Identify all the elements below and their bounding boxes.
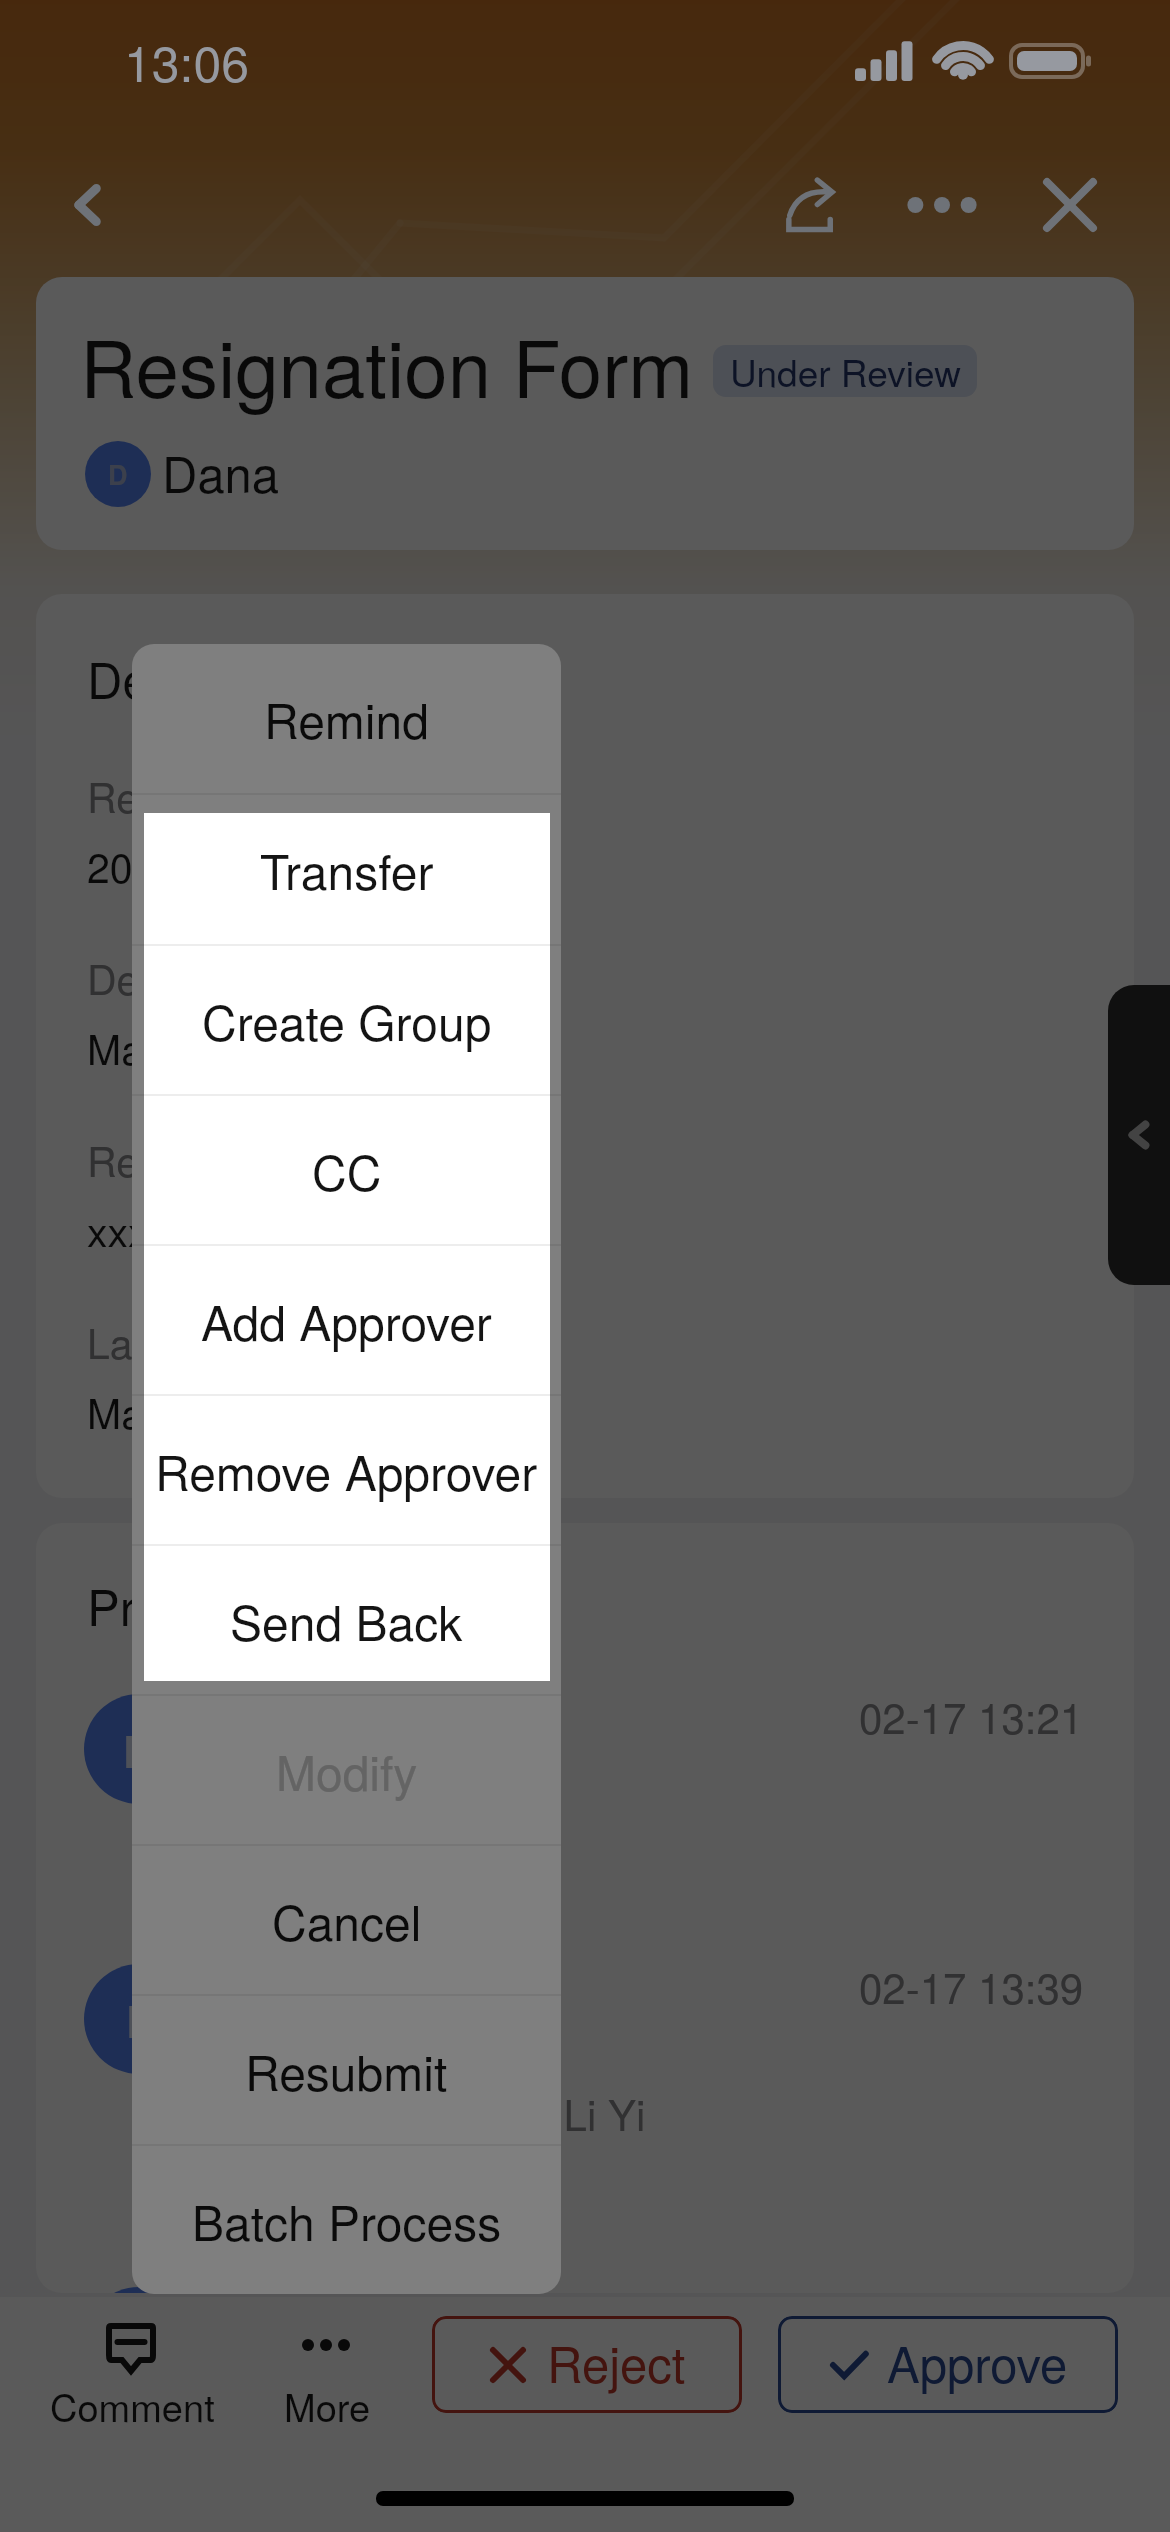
staticText: Resignation Date <box>87 766 401 825</box>
staticText: Remind <box>264 684 429 753</box>
button[interactable]: Back <box>50 167 126 243</box>
staticText: 02-17 13:21 <box>859 1686 1084 1746</box>
button[interactable]: Resubmit <box>132 1996 561 2144</box>
staticText: Create Group <box>202 986 492 1055</box>
staticText: Add Approver <box>201 1286 492 1355</box>
button[interactable]: More options <box>900 163 984 247</box>
button[interactable]: Transfer <box>132 795 561 944</box>
staticText: Resubmit <box>245 2036 448 2105</box>
button[interactable]: Comment <box>26 2297 236 2432</box>
button[interactable]: Cancel <box>132 1846 561 1994</box>
staticText: xxxxxxxxxxxxxxxxxxxxx <box>87 1200 518 1259</box>
staticText: Approve <box>887 2327 1068 2397</box>
button[interactable]: Approve <box>778 2316 1118 2413</box>
staticText: 2024-02-20 <box>87 836 297 895</box>
staticText: D <box>123 1718 155 1781</box>
button[interactable]: Create Group <box>132 946 561 1094</box>
button[interactable]: Close <box>1028 163 1112 247</box>
button[interactable]: Modify <box>132 1696 561 1844</box>
staticText: Cancel <box>272 1886 422 1955</box>
staticText: Marketing Department <box>87 1018 493 1077</box>
staticText: Batch Process <box>192 2186 502 2255</box>
staticText: 02-17 13:39 <box>859 1956 1084 2016</box>
button[interactable]: Batch Process <box>132 2146 561 2294</box>
staticText: Dana <box>220 1712 326 1775</box>
staticText: Modify <box>276 1736 418 1805</box>
staticText: More <box>284 2378 371 2432</box>
staticText: Remove Approver <box>155 1436 538 1505</box>
button[interactable]: More <box>246 2297 408 2432</box>
button[interactable]: Reject <box>432 2316 742 2413</box>
staticText: Reject <box>547 2327 686 2397</box>
staticText: Reason <box>87 1130 228 1189</box>
staticText: L <box>126 1988 153 2051</box>
button[interactable]: Add Approver <box>132 1246 561 1394</box>
staticText: Approved, sent to Li Yi <box>225 2083 646 2143</box>
staticText: Last Working Day <box>87 1312 409 1371</box>
button[interactable]: Remove Approver <box>132 1396 561 1544</box>
staticText: Under Review <box>730 345 961 397</box>
staticText: Transfer <box>260 835 434 904</box>
staticText: Send Back <box>230 1586 463 1655</box>
staticText: Details <box>87 643 237 713</box>
staticText: Process <box>87 1570 264 1640</box>
staticText: Resignation Form <box>80 308 694 420</box>
staticText: D <box>108 455 128 494</box>
staticText: Department <box>87 948 303 1007</box>
staticText: Comment <box>50 2378 215 2432</box>
button[interactable]: Send Back <box>132 1546 561 1694</box>
button[interactable]: CC <box>132 1096 561 1244</box>
button[interactable]: Open side panel <box>1108 985 1170 1285</box>
staticText: CC <box>312 1136 382 1205</box>
staticText: 13:06 <box>124 25 250 97</box>
button[interactable]: Remind <box>132 644 561 793</box>
staticText: Dana <box>162 437 280 507</box>
button[interactable]: Share <box>768 163 852 247</box>
staticText: March 20, 2024 <box>87 1382 372 1441</box>
